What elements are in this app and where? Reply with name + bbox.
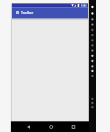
button[interactable]: Back [25, 122, 35, 132]
button[interactable]: Open navigation drawer [12, 7, 23, 18]
button[interactable]: Volume up [89, 11, 96, 17]
button[interactable]: Toolbar [21, 7, 34, 18]
button[interactable]: Recent apps [68, 122, 78, 132]
button[interactable]: Power [89, 4, 96, 10]
button[interactable]: Home [47, 122, 57, 132]
staticText: Toolbar [21, 10, 34, 15]
